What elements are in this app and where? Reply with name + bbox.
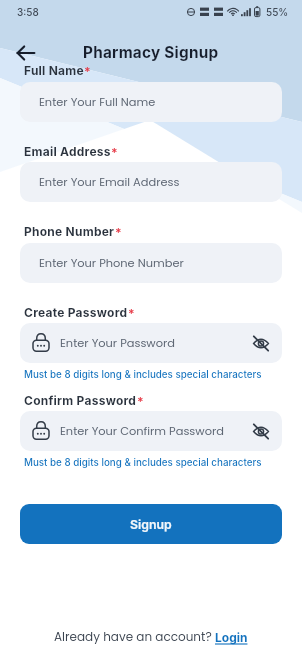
staticText: Must be 8 digits long & includes special… [24,369,262,381]
staticText: Already have an account? [54,628,215,645]
staticText: * [137,394,144,409]
staticText: * [111,145,118,160]
button[interactable]: Login [215,630,248,645]
staticText: * [84,64,91,79]
staticText: Enter Your Full Name [39,94,156,110]
button[interactable]: Enter Your Password [20,323,282,363]
staticText: Email Address [24,144,111,159]
button[interactable]: Enter Your Full Name [20,82,282,122]
staticText: Create Password [24,305,128,320]
staticText: Enter Your Password [60,335,175,351]
staticText: Signup [130,517,172,532]
staticText: 55% [266,6,289,18]
staticText: Login [215,630,248,645]
button[interactable]: Show password [241,411,281,451]
button[interactable]: Show password [241,323,281,363]
staticText: Pharmacy Signup [83,43,219,62]
staticText: Full Name [24,63,84,78]
staticText: 3:58 [17,6,39,18]
button[interactable]: Enter Your Email Address [20,162,282,202]
staticText: Phone Number [24,224,115,239]
button[interactable]: Enter Your Phone Number [20,243,282,283]
staticText: Enter Your Phone Number [39,255,184,271]
button[interactable]: Enter Your Confirm Password [20,411,282,451]
button[interactable]: Back [12,39,40,67]
staticText: * [115,225,122,240]
staticText: Must be 8 digits long & includes special… [24,457,262,469]
staticText: Confirm Password [24,393,137,408]
button[interactable]: Signup [20,504,282,544]
staticText: * [128,306,135,321]
staticText: Enter Your Email Address [39,174,180,190]
staticText: Enter Your Confirm Password [60,423,224,439]
